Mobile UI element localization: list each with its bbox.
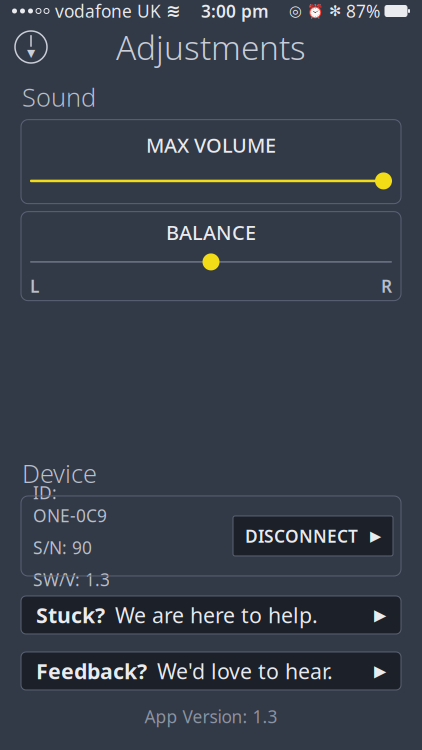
staticText: R	[381, 274, 392, 297]
staticText: ◎	[289, 3, 302, 19]
staticText: ▼	[27, 47, 35, 59]
staticText: We'd love to hear.	[157, 657, 333, 685]
staticText: 3:00 pm	[201, 0, 269, 22]
staticText: App Version: 1.3	[144, 705, 277, 728]
staticText: Sound	[22, 80, 96, 114]
staticText: ≋	[166, 1, 181, 21]
staticText: ⏰	[307, 3, 324, 19]
staticText: ID: ONE-0C9	[33, 481, 107, 527]
staticText: Feedback?	[36, 657, 147, 685]
staticText: L	[30, 274, 39, 297]
button[interactable]: DISCONNECT	[233, 516, 393, 556]
staticText: S/N: 90	[33, 536, 92, 559]
button[interactable]: Feedback?	[0, 652, 422, 690]
staticText: Device	[22, 456, 97, 490]
button[interactable]: Dismiss	[8, 24, 54, 70]
staticText: ▶	[374, 662, 386, 680]
staticText: BALANCE	[166, 219, 256, 245]
staticText: MAX VOLUME	[146, 132, 276, 158]
staticText: DISCONNECT	[245, 524, 358, 547]
staticText: Adjustments	[116, 25, 306, 69]
staticText: vodafone UK	[55, 0, 161, 22]
staticText: ▶	[370, 528, 381, 544]
staticText: 87%	[346, 0, 380, 22]
staticText: We are here to help.	[115, 601, 318, 629]
button[interactable]: Stuck?	[0, 596, 422, 634]
staticText: ▶	[374, 606, 386, 624]
staticText: SW/V: 1.3	[33, 568, 110, 591]
staticText: Stuck?	[36, 601, 105, 629]
staticText: ✻	[329, 3, 341, 19]
